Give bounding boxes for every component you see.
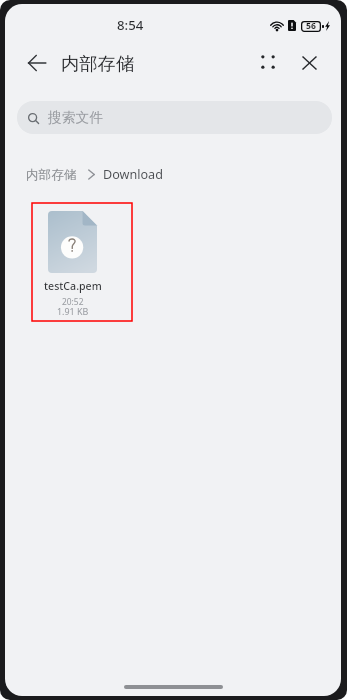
staticText: 8:54 <box>117 16 144 34</box>
staticText: 20:52 <box>62 296 84 307</box>
button[interactable]: 搜索文件 <box>17 101 332 134</box>
staticText: 搜索文件 <box>48 109 104 126</box>
button[interactable]: testCa.pem <box>32 203 132 321</box>
button[interactable]: Grid view <box>248 42 287 81</box>
button[interactable]: Back <box>15 41 58 84</box>
staticText: 内部存储 <box>61 52 135 75</box>
staticText: 1.91 KB <box>57 305 89 317</box>
button[interactable]: Download <box>103 166 163 183</box>
button[interactable]: Close <box>290 43 329 82</box>
button[interactable]: 内部存储 <box>26 167 77 183</box>
staticText: 56 <box>306 20 316 31</box>
staticText: testCa.pem <box>44 279 102 293</box>
